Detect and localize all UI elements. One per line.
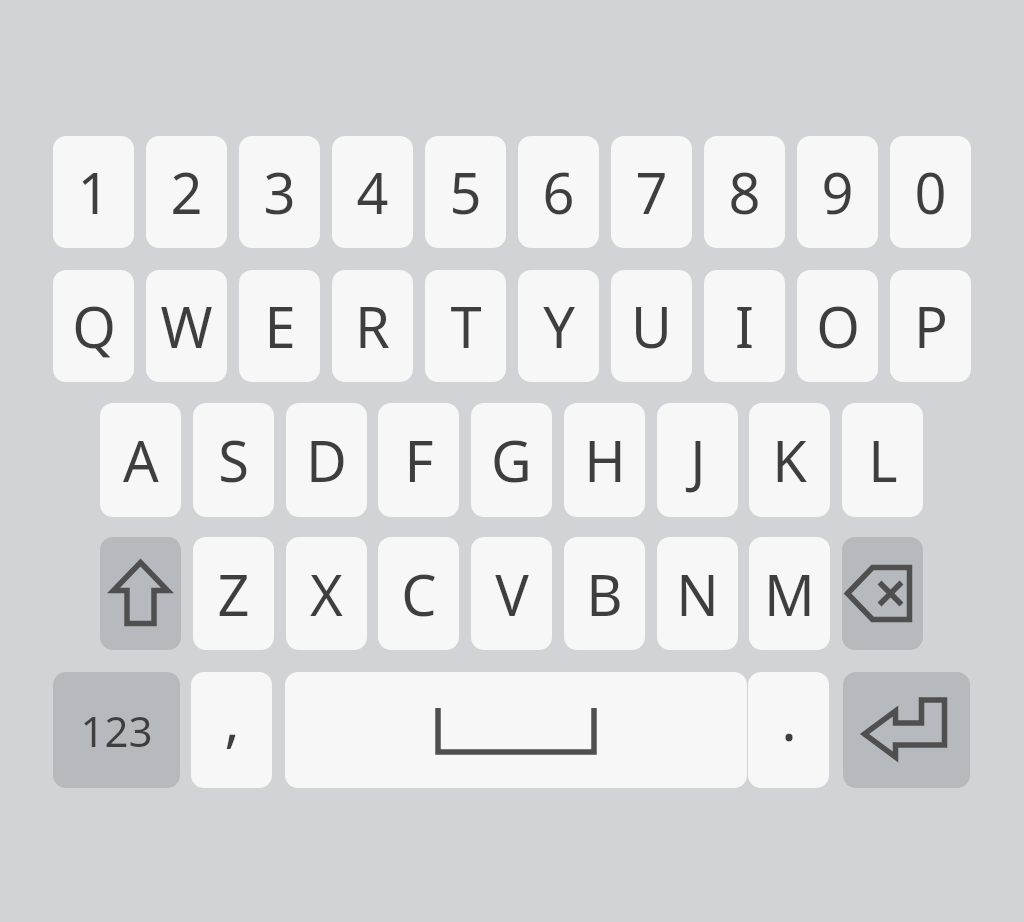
staticText: 123 (80, 702, 153, 759)
button[interactable]: 2 (146, 136, 227, 248)
staticText: W (160, 288, 213, 364)
staticText: . (781, 679, 797, 758)
staticText: Q (72, 288, 116, 364)
button[interactable]: 1 (53, 136, 134, 248)
button[interactable]: Y (518, 270, 599, 382)
staticText: M (764, 556, 815, 632)
button[interactable]: F (378, 403, 459, 517)
button[interactable]: 6 (518, 136, 599, 248)
staticText: Y (543, 288, 575, 364)
staticText: 6 (542, 154, 575, 230)
button[interactable]: A (100, 403, 181, 517)
button[interactable]: J (657, 403, 738, 517)
button[interactable]: I (704, 270, 785, 382)
staticText: L (868, 422, 898, 498)
button[interactable]: W (146, 270, 227, 382)
staticText: , (224, 679, 240, 758)
button[interactable]: 7 (611, 136, 692, 248)
staticText: 3 (263, 154, 296, 230)
staticText: P (914, 288, 948, 364)
button[interactable]: U (611, 270, 692, 382)
button[interactable]: N (657, 537, 738, 650)
staticText: 9 (821, 154, 854, 230)
button[interactable]: E (239, 270, 320, 382)
button[interactable]: H (564, 403, 645, 517)
button[interactable]: R (332, 270, 413, 382)
button[interactable]: M (749, 537, 830, 650)
staticText: G (491, 422, 532, 498)
button[interactable]: Q (53, 270, 134, 382)
staticText: K (772, 422, 807, 498)
button[interactable]: L (842, 403, 923, 517)
button[interactable]: 123 (53, 672, 180, 788)
button[interactable]: Z (193, 537, 274, 650)
staticText: T (450, 288, 482, 364)
staticText: X (310, 556, 343, 632)
staticText: O (816, 288, 860, 364)
staticText: B (586, 556, 623, 632)
button[interactable]: G (471, 403, 552, 517)
staticText: 8 (728, 154, 761, 230)
staticText: V (495, 556, 529, 632)
button[interactable]: , (191, 672, 272, 788)
button[interactable]: 9 (797, 136, 878, 248)
button[interactable]: B (564, 537, 645, 650)
button[interactable]: O (797, 270, 878, 382)
button[interactable]: P (890, 270, 971, 382)
staticText: F (404, 422, 434, 498)
staticText: U (631, 288, 672, 364)
button[interactable]: D (286, 403, 367, 517)
button[interactable]: 5 (425, 136, 506, 248)
button[interactable]: C (378, 537, 459, 650)
button[interactable]: 0 (890, 136, 971, 248)
staticText: D (306, 422, 347, 498)
button[interactable]: T (425, 270, 506, 382)
button[interactable]: Enter (843, 672, 970, 788)
staticText: 4 (356, 154, 389, 230)
staticText: N (676, 556, 719, 632)
button[interactable]: 8 (704, 136, 785, 248)
staticText: E (264, 288, 296, 364)
staticText: 2 (170, 154, 203, 230)
staticText: I (735, 288, 754, 364)
button[interactable]: K (749, 403, 830, 517)
button[interactable]: Backspace (842, 537, 923, 650)
button[interactable]: 4 (332, 136, 413, 248)
staticText: 7 (635, 154, 668, 230)
button[interactable]: Shift (100, 537, 181, 650)
staticText: J (690, 422, 706, 498)
staticText: Z (217, 556, 250, 632)
staticText: 0 (914, 154, 947, 230)
staticText: 1 (77, 154, 110, 230)
button[interactable]: Space (285, 672, 747, 788)
staticText: H (584, 422, 626, 498)
staticText: A (123, 422, 159, 498)
button[interactable]: S (193, 403, 274, 517)
button[interactable]: V (471, 537, 552, 650)
button[interactable]: 3 (239, 136, 320, 248)
staticText: C (401, 556, 437, 632)
staticText: R (355, 288, 390, 364)
staticText: 5 (449, 154, 482, 230)
staticText: S (218, 422, 249, 498)
button[interactable]: . (748, 672, 829, 788)
button[interactable]: X (286, 537, 367, 650)
